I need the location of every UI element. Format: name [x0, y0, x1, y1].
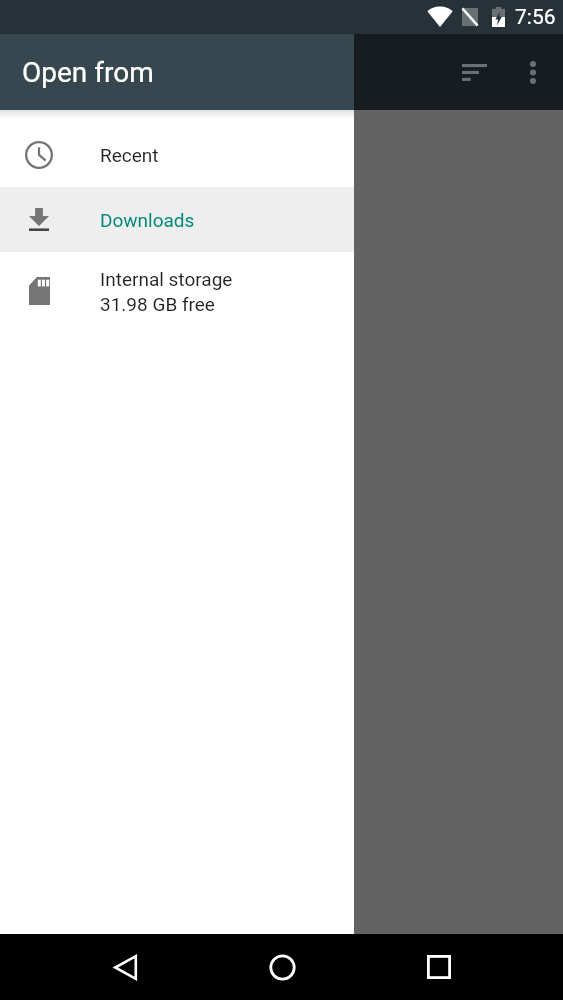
button[interactable]: More options: [509, 34, 557, 110]
staticText: Internal storage: [100, 268, 233, 290]
button[interactable]: Recent: [0, 122, 354, 187]
button[interactable]: Recent apps: [406, 934, 472, 1000]
staticText: Open from: [22, 56, 154, 89]
button[interactable]: Home: [249, 934, 315, 1000]
button[interactable]: Sort: [450, 34, 498, 110]
button[interactable]: Internal storage: [0, 252, 354, 324]
button[interactable]: Downloads: [0, 187, 354, 252]
staticText: Downloads: [100, 209, 195, 231]
staticText: 31.98 GB free: [100, 293, 215, 315]
staticText: Recent: [100, 144, 159, 166]
button[interactable]: Back: [92, 934, 158, 1000]
staticText: 7:56: [515, 5, 556, 30]
